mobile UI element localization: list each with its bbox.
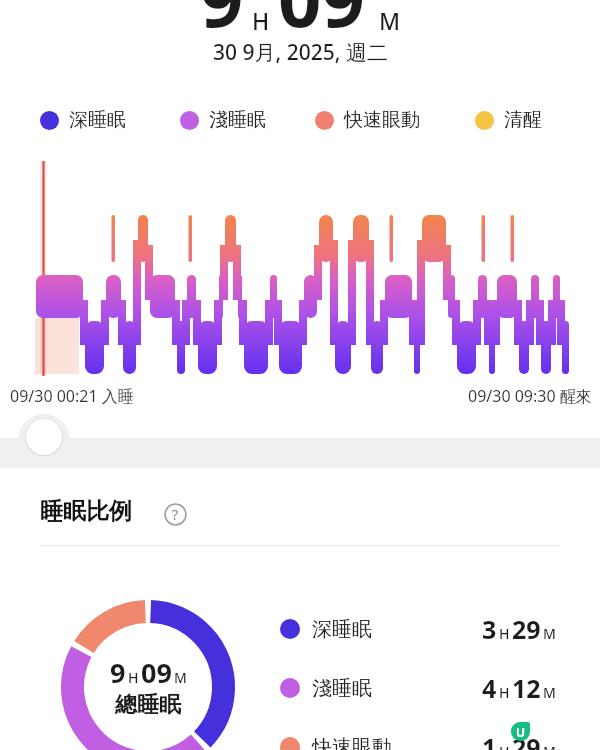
staticText: 睡眠比例 xyxy=(40,497,132,526)
staticText: 09/30 09:30 醒來 xyxy=(468,385,592,407)
button[interactable]: 快速眼動 xyxy=(280,730,556,750)
staticText: H xyxy=(499,742,510,750)
staticText: 09 xyxy=(278,0,365,50)
staticText: M xyxy=(543,624,556,643)
staticText: 9 xyxy=(110,654,126,691)
staticText: H xyxy=(499,683,510,702)
staticText: 清醒 xyxy=(504,108,542,132)
staticText: 快速眼動 xyxy=(312,735,392,750)
button[interactable]: 深睡眠 xyxy=(40,108,126,132)
staticText: M xyxy=(379,5,401,36)
button[interactable]: 淺睡眠 xyxy=(280,671,556,705)
button[interactable] xyxy=(26,419,63,456)
staticText: 快速眼動 xyxy=(344,108,420,132)
button[interactable]: 快速眼動 xyxy=(315,108,420,132)
staticText: 30 9月, 2025, 週二 xyxy=(213,38,388,67)
button[interactable]: 深睡眠 xyxy=(280,612,556,646)
staticText: M xyxy=(543,742,556,750)
staticText: M xyxy=(174,668,187,687)
staticText: ? xyxy=(172,505,179,524)
staticText: 29 xyxy=(512,730,541,750)
staticText: H xyxy=(499,624,510,643)
staticText: 12 xyxy=(512,671,541,705)
button[interactable]: ? xyxy=(164,503,187,526)
staticText: 09 xyxy=(141,654,172,691)
button[interactable]: 清醒 xyxy=(475,108,542,132)
staticText: 09/30 00:21 入睡 xyxy=(10,385,134,407)
staticText: 3 xyxy=(482,612,497,646)
staticText: 淺睡眠 xyxy=(312,676,372,701)
staticText: 深睡眠 xyxy=(312,617,372,642)
staticText: U xyxy=(516,724,526,740)
staticText: 深睡眠 xyxy=(69,108,126,132)
staticText: 29 xyxy=(512,612,541,646)
staticText: 9 xyxy=(200,0,244,50)
staticText: H xyxy=(128,668,139,687)
button[interactable]: 淺睡眠 xyxy=(180,108,266,132)
staticText: 淺睡眠 xyxy=(209,108,266,132)
staticText: 總睡眠 xyxy=(115,691,181,719)
staticText: M xyxy=(543,683,556,702)
staticText: H xyxy=(252,5,270,36)
staticText: 1 xyxy=(482,730,497,750)
staticText: 4 xyxy=(482,671,497,705)
